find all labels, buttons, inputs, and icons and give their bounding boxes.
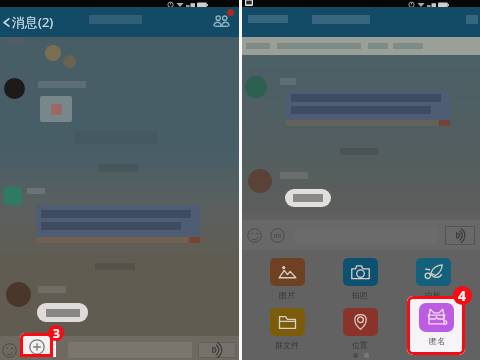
staticText: 位置 xyxy=(352,340,368,350)
staticText: 匿名 xyxy=(429,336,445,346)
button[interactable]: 拍照 xyxy=(342,258,378,300)
button[interactable]: 位置 xyxy=(342,308,378,350)
button[interactable]: Voice message xyxy=(198,342,236,358)
button[interactable]: Voice message xyxy=(445,226,475,245)
staticText: 群文件 xyxy=(275,340,299,350)
button[interactable]: Emoji xyxy=(2,343,17,358)
staticText: 白板 xyxy=(425,290,441,300)
button[interactable]: Keyboard xyxy=(270,228,285,243)
button[interactable]: 群文件 xyxy=(269,308,305,350)
button[interactable]: 白板 xyxy=(415,258,451,300)
staticText: 4 xyxy=(458,286,467,305)
button[interactable]: Group members xyxy=(212,13,231,32)
button[interactable]: More options xyxy=(20,333,53,357)
staticText: 拍照 xyxy=(352,290,368,300)
staticText: 3 xyxy=(53,325,60,341)
button[interactable]: 图片 xyxy=(269,258,305,300)
staticText: 图片 xyxy=(279,290,295,300)
button[interactable]: Emoji xyxy=(247,228,262,243)
staticText: 消息(2) xyxy=(12,13,54,31)
button[interactable]: 消息(2) xyxy=(1,13,54,31)
button[interactable]: 匿名 xyxy=(407,296,465,355)
